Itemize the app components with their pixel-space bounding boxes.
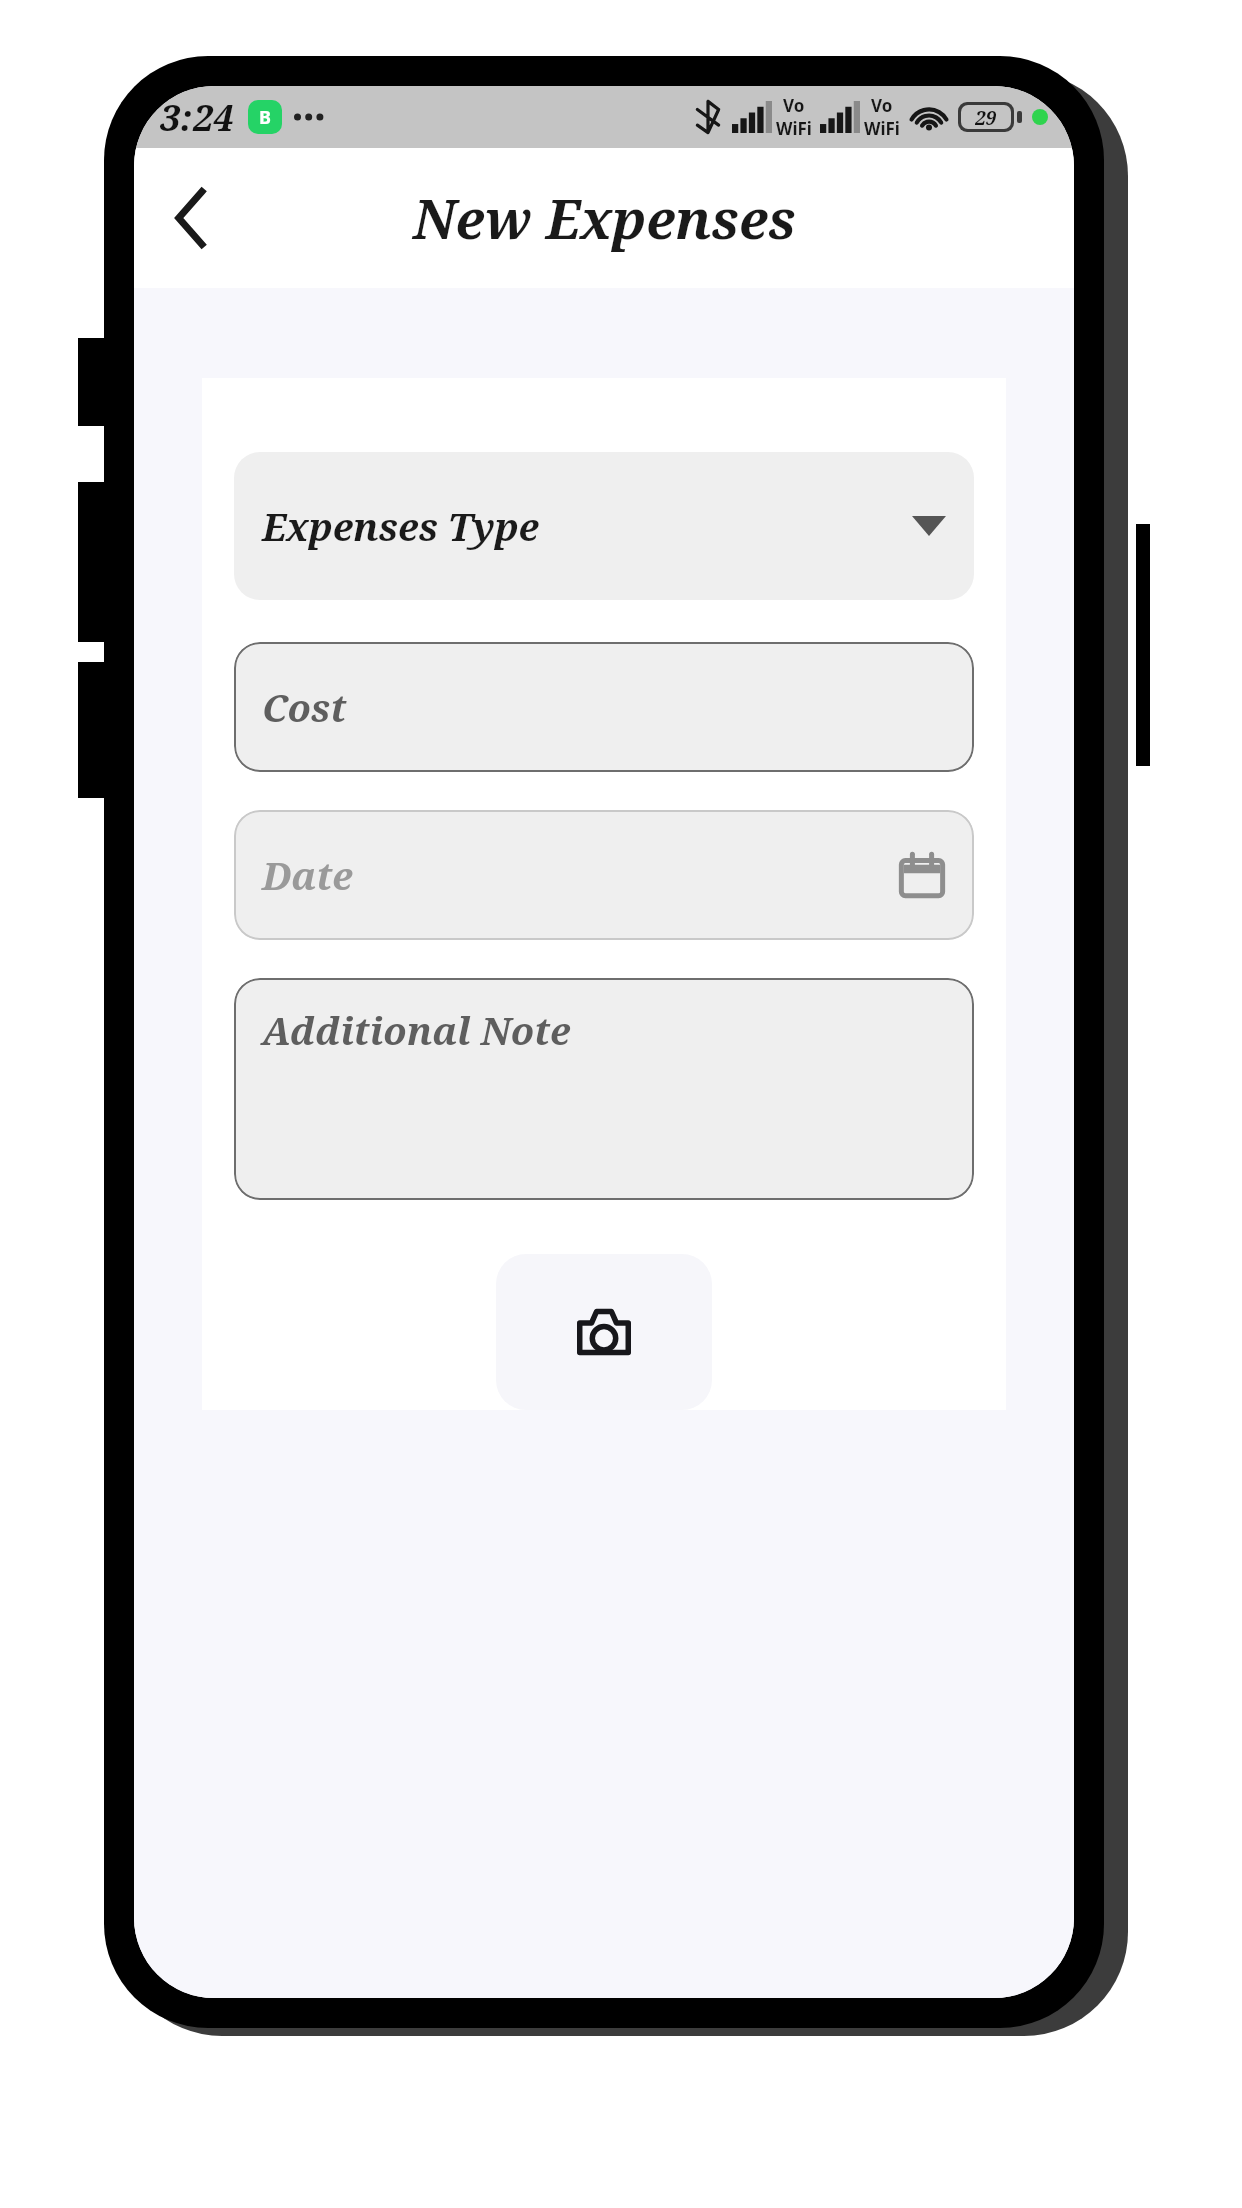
staticText: 3:24	[160, 93, 234, 142]
staticText: B	[259, 105, 271, 130]
staticText: Cost	[262, 681, 347, 733]
staticText: 29	[975, 105, 997, 129]
button[interactable]: Expenses Type	[234, 452, 974, 600]
staticText: Vo	[871, 94, 893, 117]
staticText: New Expenses	[413, 181, 796, 255]
button[interactable]: Cost	[234, 642, 974, 772]
staticText: Additional Note	[262, 1004, 571, 1056]
button[interactable]: Back	[148, 175, 234, 261]
button[interactable]: Add photo	[496, 1254, 712, 1410]
button[interactable]: Additional Note	[234, 978, 974, 1200]
staticText: Expenses Type	[262, 500, 539, 552]
staticText: Date	[262, 849, 353, 901]
staticText: WiFi	[864, 117, 900, 140]
staticText: WiFi	[776, 117, 812, 140]
button[interactable]: Date	[234, 810, 974, 940]
staticText: Vo	[783, 94, 805, 117]
